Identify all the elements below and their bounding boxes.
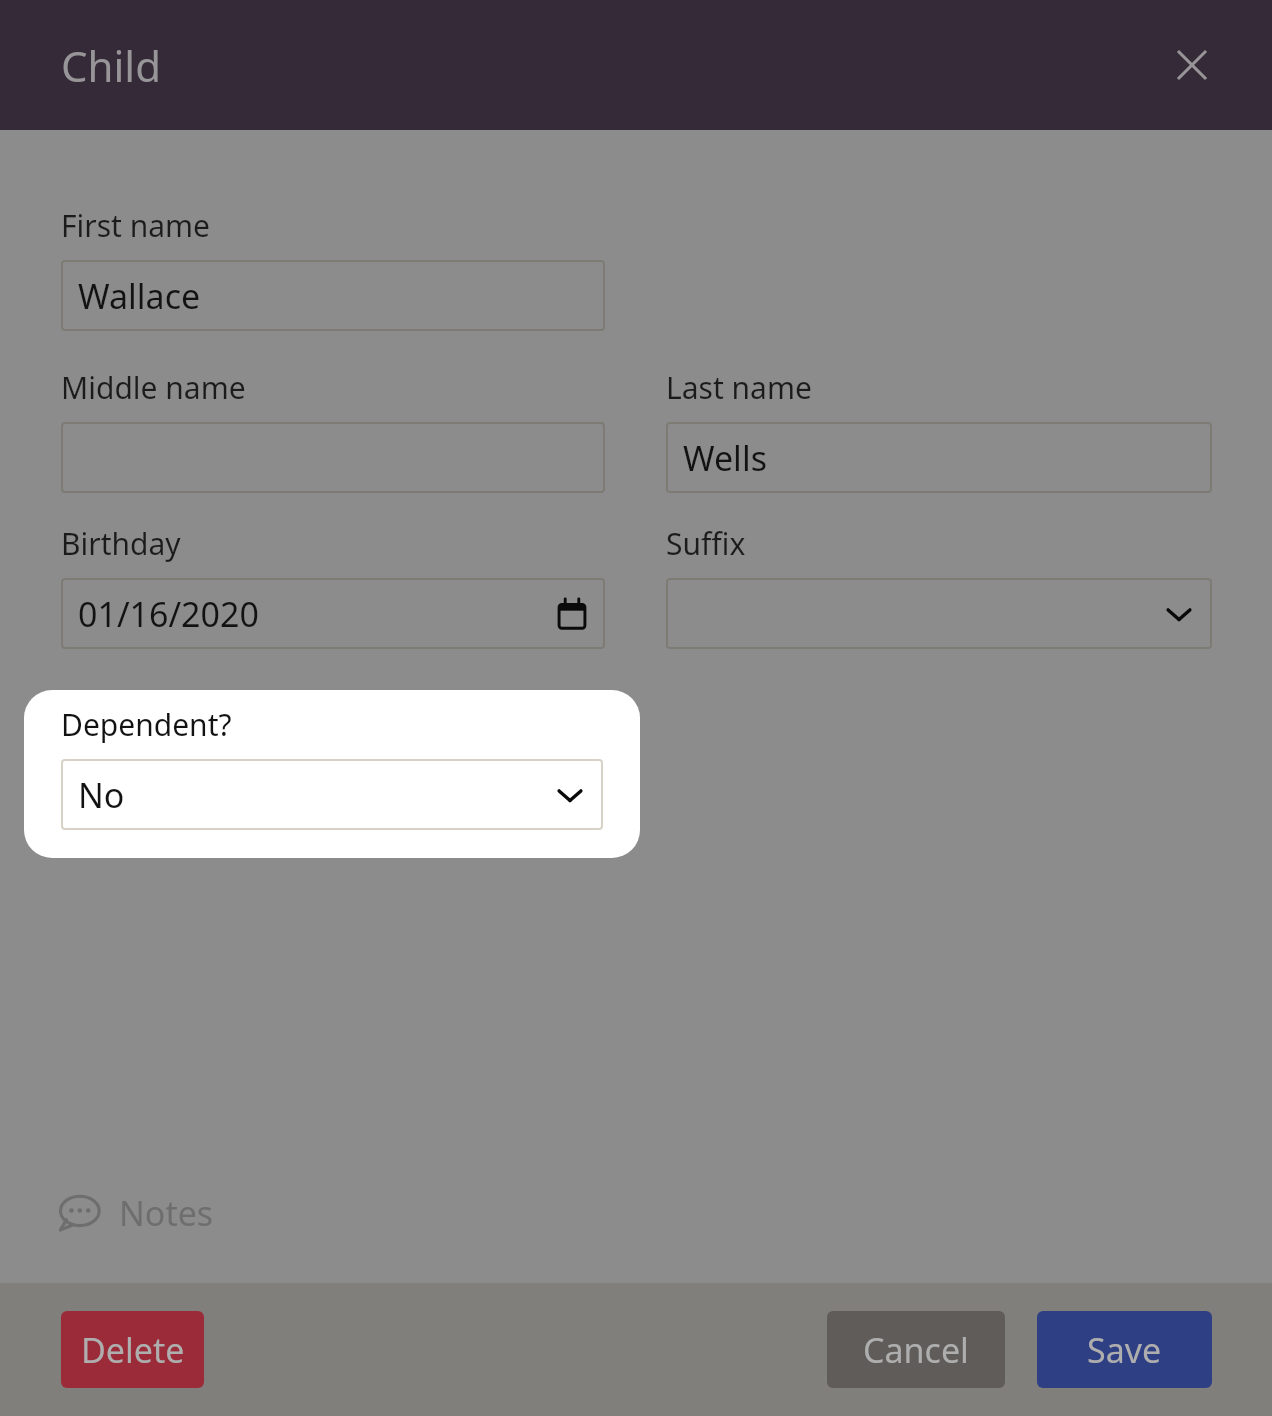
staticText: Middle name (61, 367, 246, 408)
button[interactable]: Delete (61, 1311, 204, 1388)
staticText: Last name (666, 367, 812, 408)
button[interactable] (666, 578, 1212, 649)
staticText: Wells (683, 435, 767, 481)
button[interactable] (61, 422, 605, 493)
button[interactable]: Wallace (61, 260, 605, 331)
staticText: No (78, 772, 125, 818)
staticText: Wallace (78, 273, 201, 319)
button[interactable]: Save (1037, 1311, 1212, 1388)
staticText: Delete (81, 1327, 185, 1373)
staticText: Child (61, 37, 162, 94)
button[interactable]: Cancel (827, 1311, 1005, 1388)
staticText: Birthday (61, 523, 181, 564)
button[interactable]: No (61, 759, 603, 830)
staticText: Save (1087, 1327, 1162, 1373)
staticText: Cancel (863, 1327, 969, 1373)
button[interactable]: Wells (666, 422, 1212, 493)
staticText: First name (61, 205, 211, 246)
staticText: Suffix (666, 523, 746, 564)
staticText: Dependent? (61, 704, 232, 745)
staticText: Notes (119, 1190, 214, 1236)
button[interactable]: 01/16/2020 (61, 578, 605, 649)
staticText: 01/16/2020 (78, 591, 259, 637)
button[interactable]: Notes (58, 1190, 214, 1236)
button[interactable]: Close (1170, 43, 1214, 87)
